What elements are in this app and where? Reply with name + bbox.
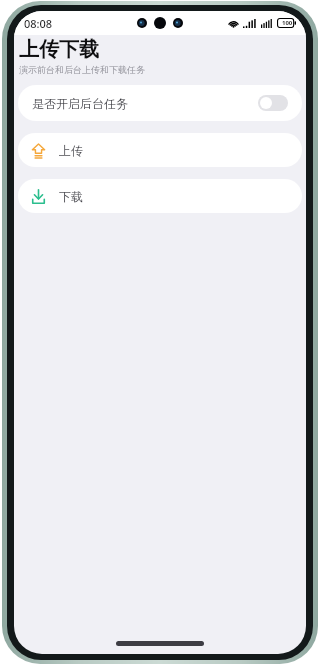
button[interactable]: Toggle background task (258, 95, 288, 111)
button[interactable]: 上传 (18, 133, 302, 167)
button[interactable]: 下载 (18, 179, 302, 213)
staticText: 上传 (59, 143, 83, 158)
staticText: 演示前台和后台上传和下载任务 (19, 64, 145, 75)
staticText: 100 (282, 19, 293, 27)
staticText: 上传下载 (19, 37, 99, 62)
staticText: 08:08 (24, 16, 53, 31)
staticText: 下载 (59, 189, 83, 204)
staticText: 是否开启后台任务 (32, 96, 128, 111)
button[interactable]: 是否开启后台任务 (18, 85, 302, 121)
